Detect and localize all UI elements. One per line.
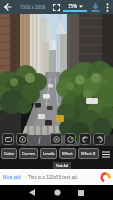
button[interactable]: Levels bbox=[40, 148, 57, 159]
button[interactable] bbox=[52, 0, 61, 14]
button[interactable]: Effect II bbox=[78, 148, 99, 159]
button[interactable] bbox=[101, 0, 113, 14]
button[interactable]: 75% bbox=[63, 3, 87, 12]
staticText: Test Ad bbox=[56, 163, 68, 168]
button[interactable] bbox=[50, 185, 64, 200]
button[interactable] bbox=[64, 133, 76, 145]
staticText: This is a 320x50 test ad. bbox=[28, 174, 78, 180]
button[interactable]: Nice job! bbox=[0, 169, 113, 185]
button[interactable] bbox=[50, 133, 62, 145]
button[interactable]: Color bbox=[1, 148, 17, 159]
staticText: 75% bbox=[68, 3, 77, 9]
staticText: Curves bbox=[22, 151, 35, 156]
button[interactable]: Curves bbox=[19, 148, 38, 159]
staticText: Color bbox=[4, 151, 15, 156]
button[interactable] bbox=[74, 185, 88, 200]
button[interactable] bbox=[16, 133, 28, 145]
button[interactable] bbox=[93, 133, 105, 145]
staticText: Effect II bbox=[81, 151, 96, 156]
button[interactable]: Effect bbox=[59, 148, 76, 159]
staticText: Levels bbox=[43, 151, 55, 156]
button[interactable] bbox=[25, 185, 39, 200]
button[interactable] bbox=[90, 0, 101, 14]
button[interactable] bbox=[79, 133, 91, 145]
button[interactable] bbox=[0, 0, 16, 14]
button[interactable] bbox=[101, 148, 111, 160]
staticText: Effect bbox=[62, 151, 73, 156]
staticText: 1500 x 2000 bbox=[20, 4, 46, 10]
button[interactable] bbox=[2, 133, 14, 145]
staticText: Nice job! bbox=[3, 174, 22, 180]
